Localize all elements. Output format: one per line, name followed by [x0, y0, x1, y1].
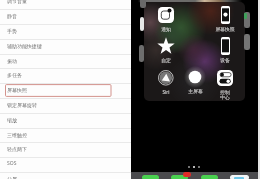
button[interactable]: 缩放: [0, 113, 131, 128]
button[interactable]: 调节音量: [0, 0, 131, 9]
staticText: 屏幕快照: [7, 87, 27, 93]
staticText: Siri: [162, 89, 170, 96]
button[interactable]: [183, 172, 191, 177]
button[interactable]: 三维触控: [0, 128, 131, 143]
button[interactable]: 振动: [0, 54, 131, 69]
button[interactable]: 辅助功能快捷键: [0, 39, 131, 54]
button[interactable]: Notifications: [151, 7, 181, 41]
button[interactable]: 轻点两下: [0, 142, 131, 157]
staticText: SOS: [7, 160, 17, 167]
button[interactable]: Device: [210, 38, 240, 72]
other: Control Center: [217, 70, 233, 86]
button[interactable]: Siri: [151, 70, 181, 101]
other: Home: [187, 69, 203, 85]
staticText: 轻点两下: [7, 146, 27, 152]
button[interactable]: [201, 175, 218, 179]
button[interactable]: [142, 175, 159, 179]
button[interactable]: Home: [180, 69, 210, 101]
other: Siri: [158, 70, 174, 86]
button[interactable]: [171, 175, 188, 179]
button[interactable]: [230, 175, 249, 179]
staticText: 多任务: [7, 72, 22, 78]
button[interactable]: Control Center: [210, 70, 240, 101]
button[interactable]: 屏幕快照: [0, 83, 131, 98]
other: Custom: [157, 37, 175, 55]
button[interactable]: 静音: [0, 9, 131, 24]
staticText: 自定: [161, 57, 171, 63]
staticText: 通知: [161, 26, 171, 32]
button[interactable]: 分屏: [0, 172, 131, 179]
button[interactable]: 锁定屏幕旋转: [0, 98, 131, 113]
staticText: 分屏: [7, 176, 17, 179]
staticText: 缩放: [7, 117, 17, 123]
button[interactable]: Custom: [151, 38, 181, 72]
staticText: 辅助功能快捷键: [7, 43, 42, 49]
button[interactable]: Screenshot: [210, 7, 240, 41]
staticText: 主屏幕: [188, 88, 203, 94]
other: Screenshot: [221, 6, 230, 24]
staticText: 锁定屏幕旋转: [7, 102, 37, 108]
button[interactable]: 手势: [0, 24, 131, 39]
staticText: 手势: [7, 28, 17, 34]
other: Device: [221, 37, 230, 55]
staticText: 屏幕快照: [215, 26, 235, 32]
staticText: 设备: [220, 57, 230, 63]
staticText: 静音: [7, 13, 17, 19]
button[interactable]: 多任务: [0, 68, 131, 83]
staticText: 三维触控: [7, 132, 27, 138]
staticText: 控制 中心: [220, 89, 230, 100]
button[interactable]: SOS: [0, 157, 131, 172]
other: Notifications: [158, 7, 174, 23]
staticText: 调节音量: [7, 0, 27, 4]
staticText: 振动: [7, 58, 17, 64]
